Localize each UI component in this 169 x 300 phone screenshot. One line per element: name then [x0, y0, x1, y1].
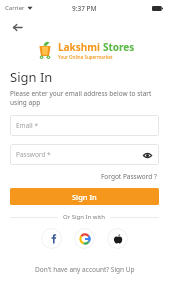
button[interactable]: Sign in with Google — [74, 228, 95, 249]
button[interactable]: Password * — [10, 144, 159, 165]
staticText: Carrier — [5, 4, 25, 12]
button[interactable]: Sign in with Facebook — [41, 228, 62, 249]
staticText: Your Online Supermarket — [58, 54, 113, 60]
staticText: Sign In — [72, 192, 97, 202]
button[interactable]: Forgot Password ? — [99, 170, 159, 183]
staticText: 9:37 PM — [72, 4, 97, 13]
button[interactable]: Sign In — [10, 188, 159, 205]
staticText: Or Sign In with — [63, 213, 105, 221]
staticText: Email * — [16, 121, 38, 130]
staticText: Please enter your email address below to… — [10, 89, 159, 107]
staticText: Don't have any account? Sign Up — [35, 265, 135, 274]
staticText: Stores — [103, 40, 135, 54]
staticText: Lakshmi — [58, 40, 103, 54]
staticText: Password * — [16, 150, 51, 159]
staticText: Sign In — [10, 68, 53, 86]
button[interactable]: Back — [8, 18, 26, 36]
button[interactable]: Show password — [141, 149, 153, 161]
button[interactable]: Sign in with Apple — [107, 228, 128, 249]
button[interactable]: Email * — [10, 115, 159, 136]
staticText: Forgot Password ? — [101, 172, 157, 181]
button[interactable]: Don't have any account? Sign Up — [33, 263, 137, 276]
